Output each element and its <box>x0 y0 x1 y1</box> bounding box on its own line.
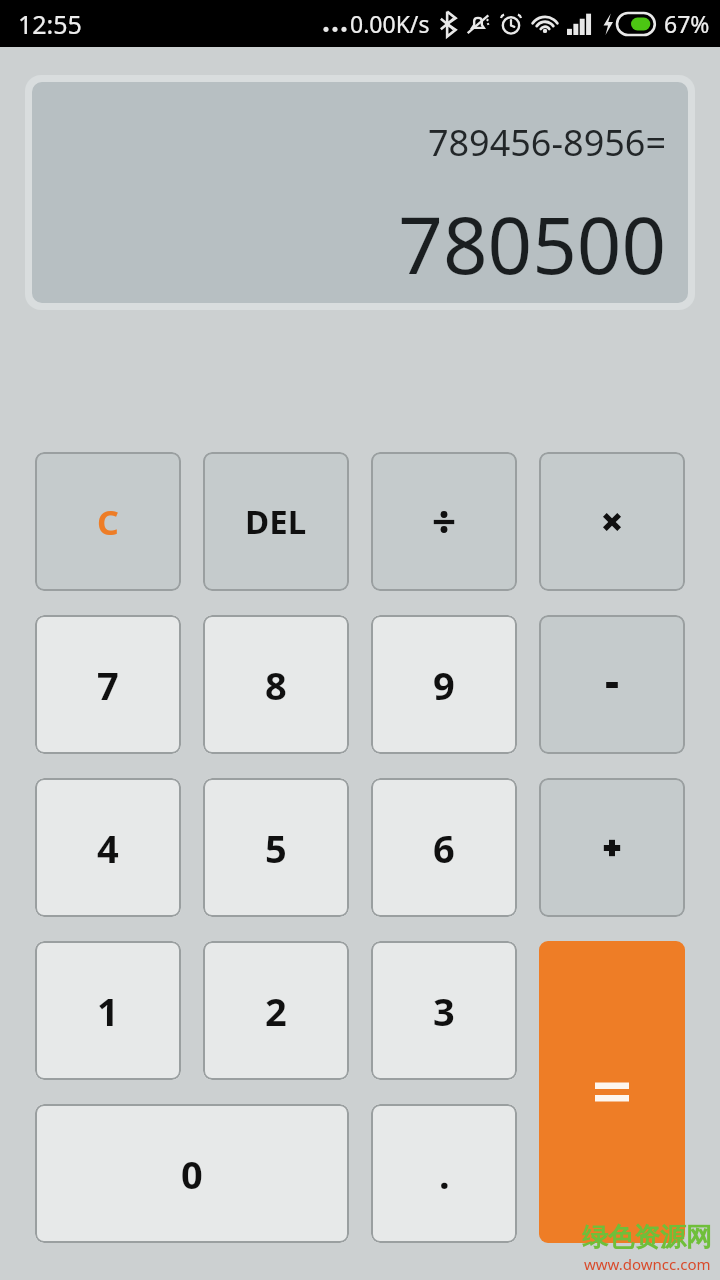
staticText: www.downcc.com <box>584 1254 711 1274</box>
staticText: 67% <box>664 8 710 39</box>
staticText: 2 <box>265 985 287 1037</box>
button[interactable]: Minus <box>539 615 685 754</box>
button[interactable]: 3 <box>371 941 517 1080</box>
button[interactable]: Plus <box>539 778 685 917</box>
staticText: C <box>97 499 119 545</box>
staticText: 1 <box>97 985 119 1037</box>
staticText: 4 <box>97 822 119 874</box>
button[interactable]: 7 <box>35 615 181 754</box>
button[interactable]: 6 <box>371 778 517 917</box>
staticText: 8 <box>265 659 287 711</box>
button[interactable]: Divide <box>371 452 517 591</box>
button[interactable]: 8 <box>203 615 349 754</box>
staticText: DEL <box>245 499 307 544</box>
staticText: 12:55 <box>18 7 82 41</box>
button[interactable]: C <box>35 452 181 591</box>
staticText: 9 <box>433 659 455 711</box>
staticText: 780500 <box>398 191 666 297</box>
button[interactable]: DEL <box>203 452 349 591</box>
button[interactable]: 4 <box>35 778 181 917</box>
staticText: 6 <box>433 822 455 874</box>
button[interactable]: . <box>371 1104 517 1243</box>
button[interactable]: Equals <box>539 941 685 1243</box>
staticText: . <box>439 1148 450 1200</box>
button[interactable]: 9 <box>371 615 517 754</box>
button[interactable]: 2 <box>203 941 349 1080</box>
button[interactable]: 0 <box>35 1104 349 1243</box>
staticText: 3 <box>433 985 455 1037</box>
staticText: 绿色资源网 <box>582 1221 712 1254</box>
staticText: 789456-8956= <box>427 118 666 167</box>
staticText: 0 <box>181 1148 203 1200</box>
button[interactable]: 5 <box>203 778 349 917</box>
staticText: 7 <box>97 659 119 711</box>
staticText: 5 <box>265 822 287 874</box>
button[interactable]: Multiply <box>539 452 685 591</box>
staticText: 0.00K/s <box>350 8 430 39</box>
button[interactable]: 1 <box>35 941 181 1080</box>
